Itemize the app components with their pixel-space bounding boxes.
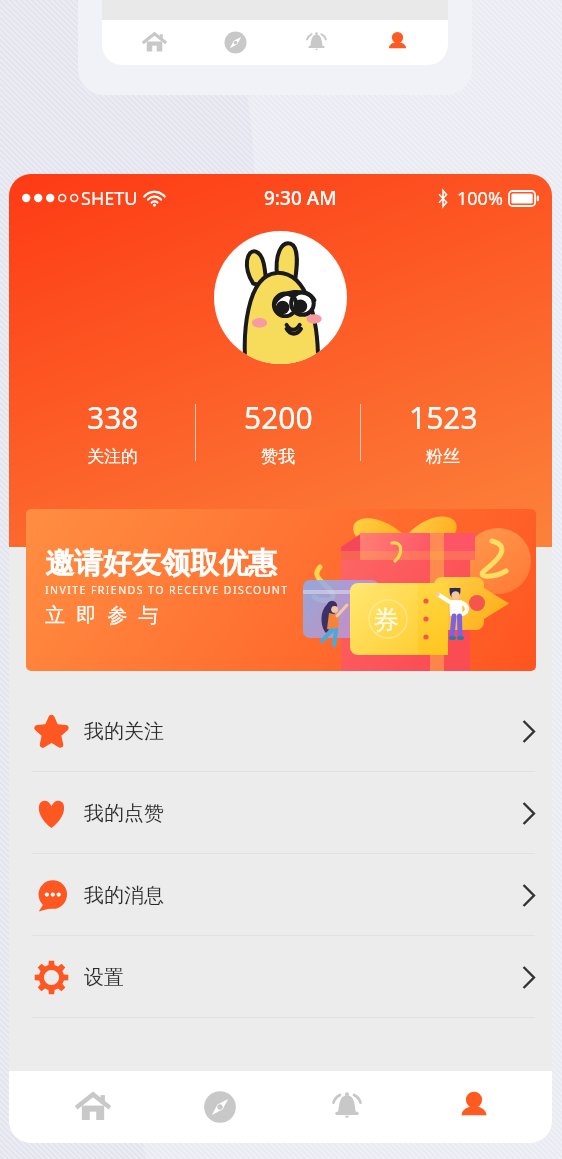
staticText: 我的点赞 <box>84 801 164 826</box>
button[interactable]: Explore <box>195 20 276 65</box>
staticText: 关注的 <box>87 446 138 467</box>
staticText: 9:30 AM <box>264 185 337 211</box>
button[interactable]: Home <box>114 20 195 65</box>
staticText: 100% <box>457 186 503 211</box>
button[interactable]: Home <box>29 1071 156 1143</box>
button[interactable]: Profile <box>357 20 438 65</box>
button[interactable]: 我的关注 <box>9 690 552 772</box>
button[interactable]: 我的点赞 <box>9 772 552 854</box>
staticText: 我的关注 <box>84 719 164 744</box>
button[interactable]: 1523 <box>361 397 525 467</box>
staticText: INVITE FRIENDS TO RECEIVE DISCOUNT <box>45 583 289 597</box>
button[interactable]: Notifications <box>276 20 357 65</box>
staticText: 我的消息 <box>84 883 164 908</box>
staticText: 5200 <box>244 397 313 438</box>
button[interactable]: 5200 <box>196 397 360 467</box>
staticText: 券 <box>373 604 399 637</box>
button[interactable]: Notifications <box>283 1071 410 1143</box>
staticText: 赞我 <box>261 446 295 467</box>
staticText: 邀请好友领取优惠 <box>45 545 277 582</box>
button[interactable]: Explore <box>156 1071 283 1143</box>
staticText: SHETU <box>81 186 138 211</box>
button[interactable]: Profile <box>410 1071 537 1143</box>
button[interactable]: 设置 <box>9 936 552 1018</box>
staticText: 粉丝 <box>426 446 460 467</box>
staticText: 设置 <box>84 965 124 990</box>
staticText: 338 <box>87 397 139 438</box>
button[interactable]: 338 <box>30 397 195 467</box>
button[interactable]: 我的消息 <box>9 854 552 936</box>
staticText: 立 即 参 与 <box>45 601 162 628</box>
staticText: 1523 <box>409 397 478 438</box>
